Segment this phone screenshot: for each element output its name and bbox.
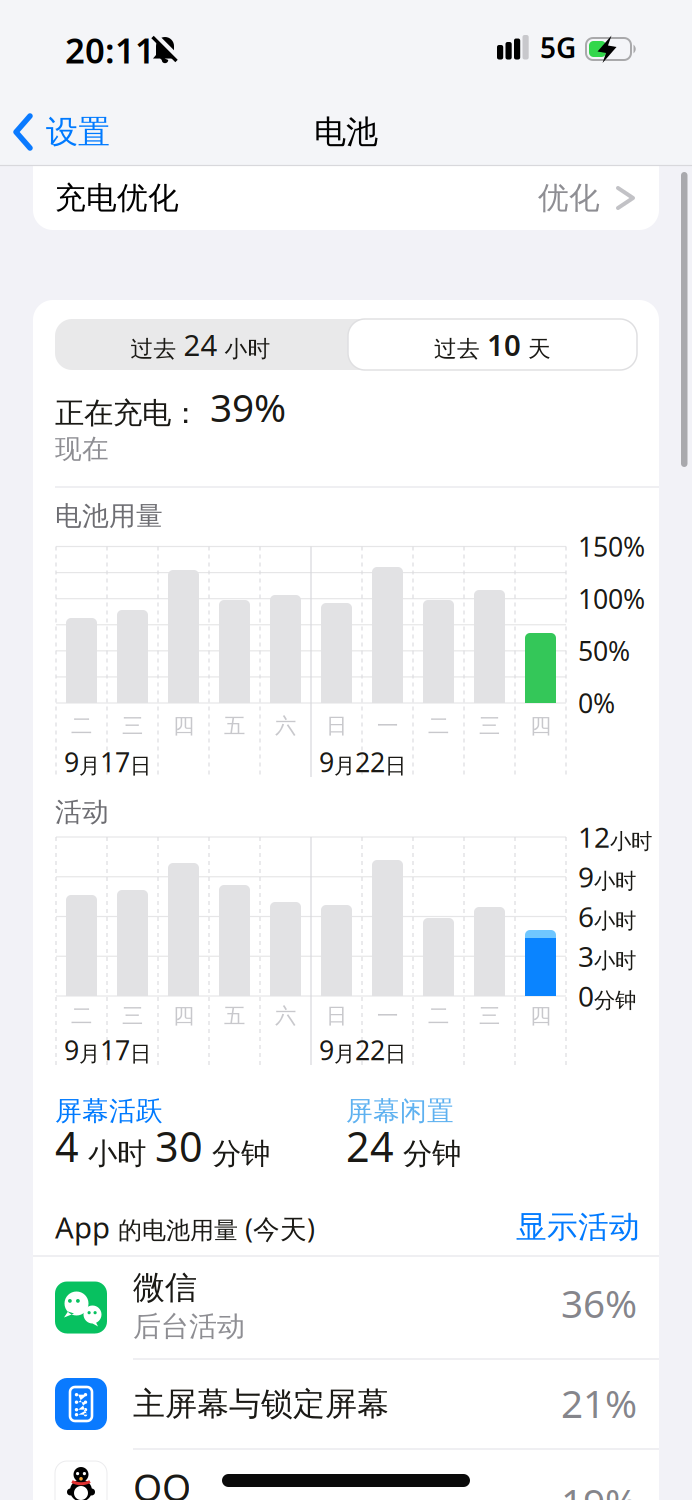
- staticText: 电池: [314, 112, 378, 152]
- staticText: 三: [122, 1003, 143, 1029]
- staticText: 六: [275, 713, 296, 739]
- staticText: 过去 10 天: [434, 325, 551, 364]
- staticText: 四: [173, 713, 194, 739]
- button[interactable]: 充电优化: [33, 165, 659, 231]
- staticText: 36%: [561, 1277, 637, 1329]
- button[interactable]: 设置: [14, 112, 154, 152]
- staticText: 0%: [578, 685, 615, 720]
- staticText: 日: [326, 1003, 347, 1029]
- staticText: 5G: [540, 29, 576, 66]
- staticText: App 的电池用量 (今天): [55, 1207, 315, 1246]
- button[interactable]: 过去 10 天: [348, 319, 637, 370]
- staticText: 21%: [561, 1377, 637, 1429]
- staticText: 二: [428, 713, 449, 739]
- staticText: 3小时: [578, 938, 636, 975]
- staticText: 150%: [578, 529, 645, 564]
- staticText: 一: [377, 1003, 398, 1029]
- staticText: 主屏幕与锁定屏幕: [133, 1384, 389, 1424]
- staticText: 电池用量: [55, 500, 163, 532]
- staticText: 100%: [578, 581, 645, 616]
- staticText: 优化: [538, 179, 600, 217]
- staticText: 过去 24 小时: [130, 325, 270, 364]
- staticText: 二: [71, 713, 92, 739]
- staticText: 9月22日: [319, 1032, 406, 1068]
- staticText: 后台活动: [133, 1309, 245, 1344]
- button[interactable]: 过去 24 小时: [55, 319, 346, 370]
- staticText: 显示活动: [516, 1208, 640, 1246]
- staticText: 屏幕闲置: [346, 1095, 454, 1127]
- button[interactable]: QQ: [33, 1449, 659, 1500]
- staticText: 四: [530, 713, 551, 739]
- staticText: 24 分钟: [346, 1119, 461, 1173]
- staticText: 活动: [55, 796, 109, 828]
- staticText: 设置: [46, 112, 110, 152]
- button[interactable]: 微信: [33, 1256, 659, 1359]
- staticText: 五: [224, 1003, 245, 1029]
- staticText: 二: [71, 1003, 92, 1029]
- staticText: 9月17日: [64, 1032, 151, 1068]
- staticText: 现在: [55, 433, 109, 465]
- staticText: 微信: [133, 1268, 197, 1307]
- staticText: 6小时: [578, 898, 636, 935]
- staticText: 三: [479, 713, 500, 739]
- staticText: QQ: [133, 1462, 191, 1500]
- staticText: 19%: [561, 1476, 637, 1500]
- staticText: 20:11: [65, 27, 155, 73]
- staticText: 四: [173, 1003, 194, 1029]
- staticText: 一: [377, 713, 398, 739]
- staticText: 9月17日: [64, 744, 151, 780]
- staticText: 9小时: [578, 858, 636, 895]
- staticText: 0分钟: [578, 977, 636, 1015]
- staticText: 12小时: [578, 818, 652, 856]
- staticText: 三: [479, 1003, 500, 1029]
- staticText: 日: [326, 713, 347, 739]
- button[interactable]: 主屏幕与锁定屏幕: [33, 1359, 659, 1449]
- staticText: 50%: [578, 633, 630, 668]
- staticText: 五: [224, 713, 245, 739]
- staticText: 六: [275, 1003, 296, 1029]
- staticText: 三: [122, 713, 143, 739]
- staticText: 二: [428, 1003, 449, 1029]
- staticText: 9月22日: [319, 744, 406, 780]
- staticText: 4 小时 30 分钟: [55, 1119, 270, 1173]
- staticText: 四: [530, 1003, 551, 1029]
- staticText: 屏幕活跃: [55, 1095, 163, 1127]
- button[interactable]: 显示活动: [516, 1208, 640, 1246]
- staticText: 正在充电： 39%: [55, 381, 286, 433]
- staticText: 充电优化: [55, 179, 179, 217]
